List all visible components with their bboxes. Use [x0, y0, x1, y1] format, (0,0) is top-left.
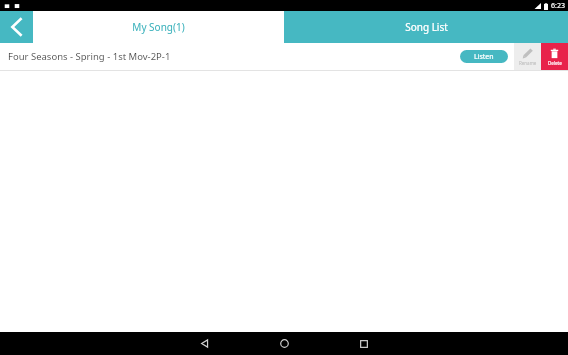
button[interactable]: Back — [164, 332, 244, 355]
staticText: Listen — [474, 52, 494, 62]
button[interactable]: Home — [244, 332, 324, 355]
staticText: Four Seasons - Spring - 1st Mov-2P-1 — [8, 50, 171, 63]
staticText: 6:23 — [551, 1, 565, 11]
button[interactable]: My Song(1) — [33, 11, 284, 43]
button[interactable]: Recent apps — [324, 332, 404, 355]
staticText: Delete — [548, 60, 562, 66]
staticText: My Song(1) — [132, 20, 185, 34]
staticText: Song List — [405, 20, 448, 34]
button[interactable]: Song List — [284, 11, 568, 43]
button[interactable]: Back — [0, 11, 33, 43]
button[interactable]: Rename — [514, 43, 541, 70]
button[interactable]: Listen — [460, 50, 508, 63]
button[interactable]: Four Seasons - Spring - 1st Mov-2P-1 — [0, 43, 460, 70]
staticText: Rename — [519, 60, 537, 66]
button[interactable]: Delete — [541, 43, 568, 70]
